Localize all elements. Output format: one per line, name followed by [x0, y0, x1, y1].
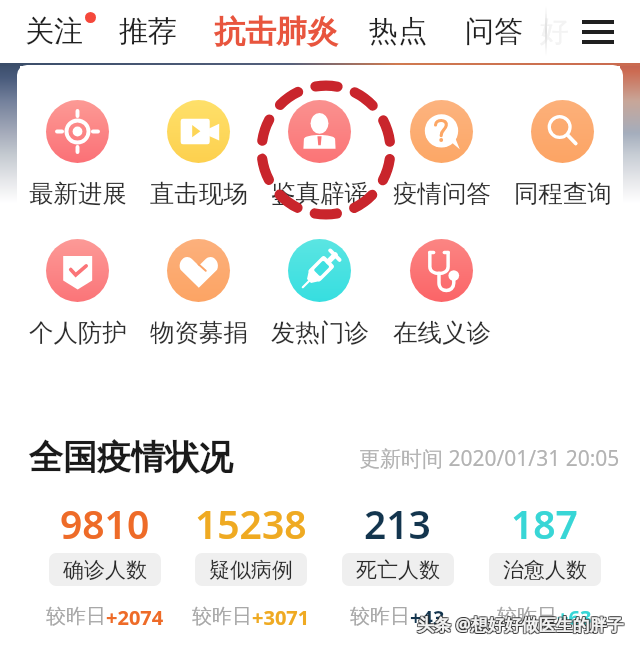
staticText: 好 — [540, 13, 569, 50]
staticText: 头条 @想好好做医生的胖子 — [418, 614, 625, 637]
staticText: 直击现场 — [150, 178, 248, 209]
staticText: 问答 — [465, 13, 523, 50]
staticText: 更新时间 2020/01/31 20:05 — [359, 444, 620, 473]
button[interactable]: 最新进展 — [17, 100, 138, 209]
staticText: 疫情问答 — [393, 178, 491, 209]
button[interactable]: 抗击肺炎 — [214, 0, 338, 63]
button[interactable]: 鉴真辟谣 — [259, 100, 380, 209]
staticText: 确诊人数 — [63, 557, 147, 583]
staticText: 头条 @想好好做医生的胖子 — [416, 613, 623, 636]
staticText: +63 — [557, 604, 592, 631]
staticText: 物资募捐 — [150, 317, 248, 348]
button[interactable]: 热点 — [369, 0, 427, 63]
button[interactable]: 发热门诊 — [259, 239, 380, 348]
staticText: +43 — [410, 604, 445, 631]
button[interactable]: 直击现场 — [138, 100, 259, 209]
staticText: 头条 @想好好做医生的胖子 — [417, 612, 624, 635]
staticText: 鉴真辟谣 — [271, 178, 369, 209]
button[interactable]: 推荐 — [119, 0, 177, 63]
staticText: 推荐 — [119, 13, 177, 50]
staticText: 较昨日 — [350, 604, 410, 629]
button[interactable]: 关注 — [25, 0, 83, 63]
button[interactable]: 物资募捐 — [138, 239, 259, 348]
staticText: 个人防护 — [29, 317, 127, 348]
button[interactable]: 疫情问答 — [381, 100, 502, 209]
button[interactable]: 问答 — [465, 0, 523, 63]
staticText: 全国疫情状况 — [29, 436, 233, 479]
staticText: 发热门诊 — [271, 317, 369, 348]
staticText: 15238 — [195, 497, 307, 541]
staticText: 头条 @想好好做医生的胖子 — [418, 612, 625, 635]
staticText: 头条 @想好好做医生的胖子 — [416, 614, 623, 637]
staticText: 头条 @想好好做医生的胖子 — [417, 613, 624, 636]
staticText: +2074 — [106, 604, 164, 631]
staticText: 头条 @想好好做医生的胖子 — [417, 614, 624, 637]
staticText: 关注 — [25, 13, 83, 50]
staticText: 抗击肺炎 — [214, 12, 338, 51]
staticText: 较昨日 — [46, 604, 106, 629]
button[interactable]: Menu — [575, 0, 621, 63]
staticText: 头条 @想好好做医生的胖子 — [418, 613, 625, 636]
staticText: 最新进展 — [29, 178, 127, 209]
staticText: 疑似病例 — [209, 557, 293, 583]
staticText: +3071 — [252, 604, 310, 631]
staticText: 热点 — [369, 13, 427, 50]
staticText: 治愈人数 — [503, 557, 587, 583]
staticText: 在线义诊 — [393, 317, 491, 348]
staticText: 死亡人数 — [356, 557, 440, 583]
staticText: 头条 @想好好做医生的胖子 — [416, 612, 623, 635]
button[interactable]: 同程查询 — [502, 100, 623, 209]
staticText: 187 — [511, 497, 578, 541]
staticText: 9810 — [60, 497, 150, 541]
staticText: 较昨日 — [497, 604, 557, 629]
staticText: 较昨日 — [192, 604, 252, 629]
button[interactable]: 在线义诊 — [381, 239, 502, 348]
staticText: 213 — [364, 497, 431, 541]
staticText: 同程查询 — [514, 178, 612, 209]
button[interactable]: 个人防护 — [17, 239, 138, 348]
